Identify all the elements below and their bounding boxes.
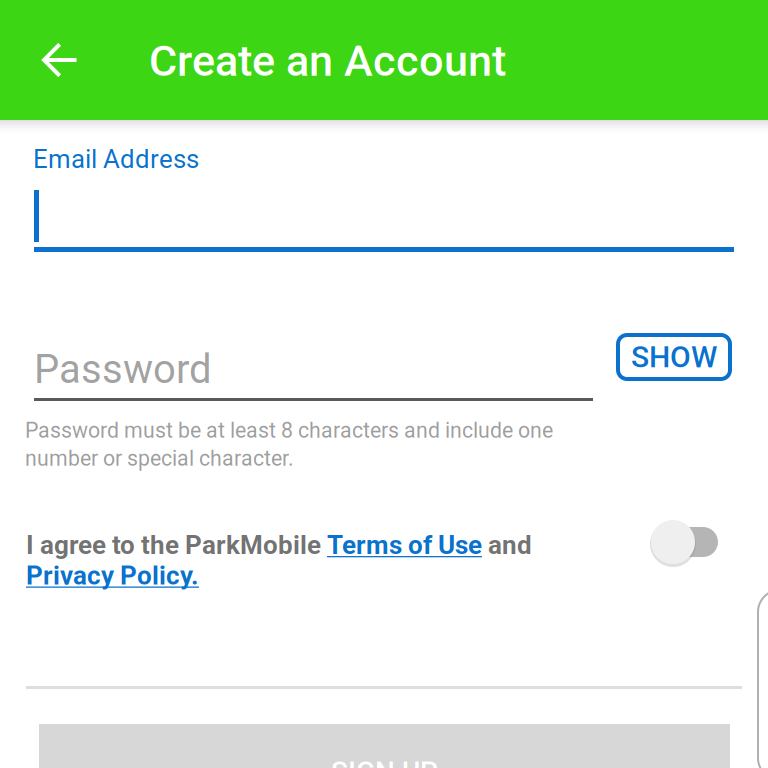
staticText: SIGN UP	[331, 756, 438, 768]
staticText: I agree to the ParkMobile	[26, 530, 327, 560]
staticText: Terms of Use	[327, 530, 482, 560]
staticText: and	[482, 530, 532, 560]
staticText: Privacy Policy.	[26, 560, 199, 591]
button[interactable]: Agree to terms	[640, 512, 736, 576]
staticText: SHOW	[631, 339, 717, 375]
staticText: number or special character.	[25, 446, 294, 471]
staticText: Password must be at least 8 characters a…	[25, 418, 553, 443]
button[interactable]: Back	[24, 24, 96, 96]
button[interactable]: SIGN UP	[39, 724, 730, 768]
button[interactable]: SHOW	[616, 333, 732, 381]
button[interactable]: Create an Account	[149, 37, 506, 85]
staticText: Create an Account	[149, 36, 506, 86]
button[interactable]: Privacy Policy.	[26, 560, 199, 591]
button[interactable]: I agree to the ParkMobile	[26, 530, 532, 560]
staticText: Email Address	[33, 144, 199, 174]
staticText: Password	[34, 346, 212, 393]
